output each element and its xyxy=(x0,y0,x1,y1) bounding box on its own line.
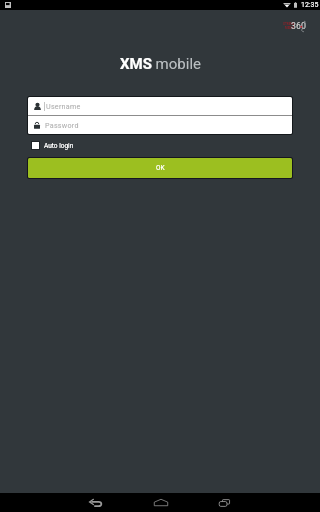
button[interactable]: Recent apps xyxy=(209,493,239,512)
button[interactable]: Back xyxy=(80,493,110,512)
button[interactable]: Password xyxy=(34,116,292,134)
staticText: Password xyxy=(45,121,79,129)
staticText: 12:35 xyxy=(301,1,319,9)
staticText: MEDIA xyxy=(285,26,295,30)
staticText: XTREME xyxy=(283,22,295,26)
button[interactable]: Home xyxy=(146,493,176,512)
button[interactable]: OK xyxy=(27,157,293,179)
staticText: Auto login xyxy=(44,142,74,150)
staticText: Username xyxy=(46,102,81,110)
button[interactable]: Auto login xyxy=(31,141,74,150)
staticText: OK xyxy=(156,164,165,172)
staticText: 360 xyxy=(291,21,306,31)
staticText: XMS mobile xyxy=(120,55,201,73)
button[interactable]: Username xyxy=(34,97,292,115)
